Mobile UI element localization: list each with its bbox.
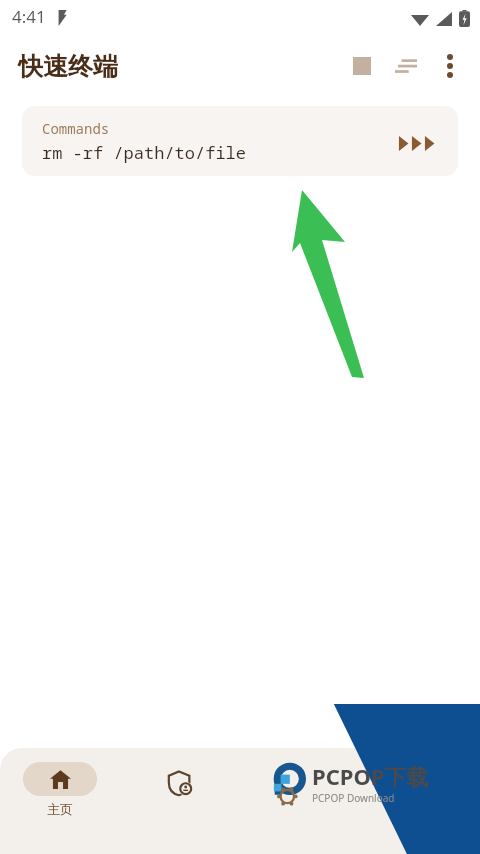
- staticText: 主页: [47, 801, 73, 817]
- staticText: PCPOP Download: [312, 791, 395, 805]
- staticText: 快速终端: [18, 51, 118, 82]
- button[interactable]: Sort: [384, 44, 428, 88]
- button[interactable]: 主页: [0, 748, 120, 854]
- staticText: PCPOP下载: [312, 761, 429, 791]
- button[interactable]: More options: [428, 44, 472, 88]
- button[interactable]: Privacy: [120, 748, 240, 854]
- staticText: Commands: [42, 119, 110, 138]
- button[interactable]: Commands: [22, 106, 458, 176]
- staticText: rm -rf /path/to/file: [42, 141, 246, 164]
- staticText: 4:41: [12, 5, 46, 28]
- button[interactable]: Stop: [340, 44, 384, 88]
